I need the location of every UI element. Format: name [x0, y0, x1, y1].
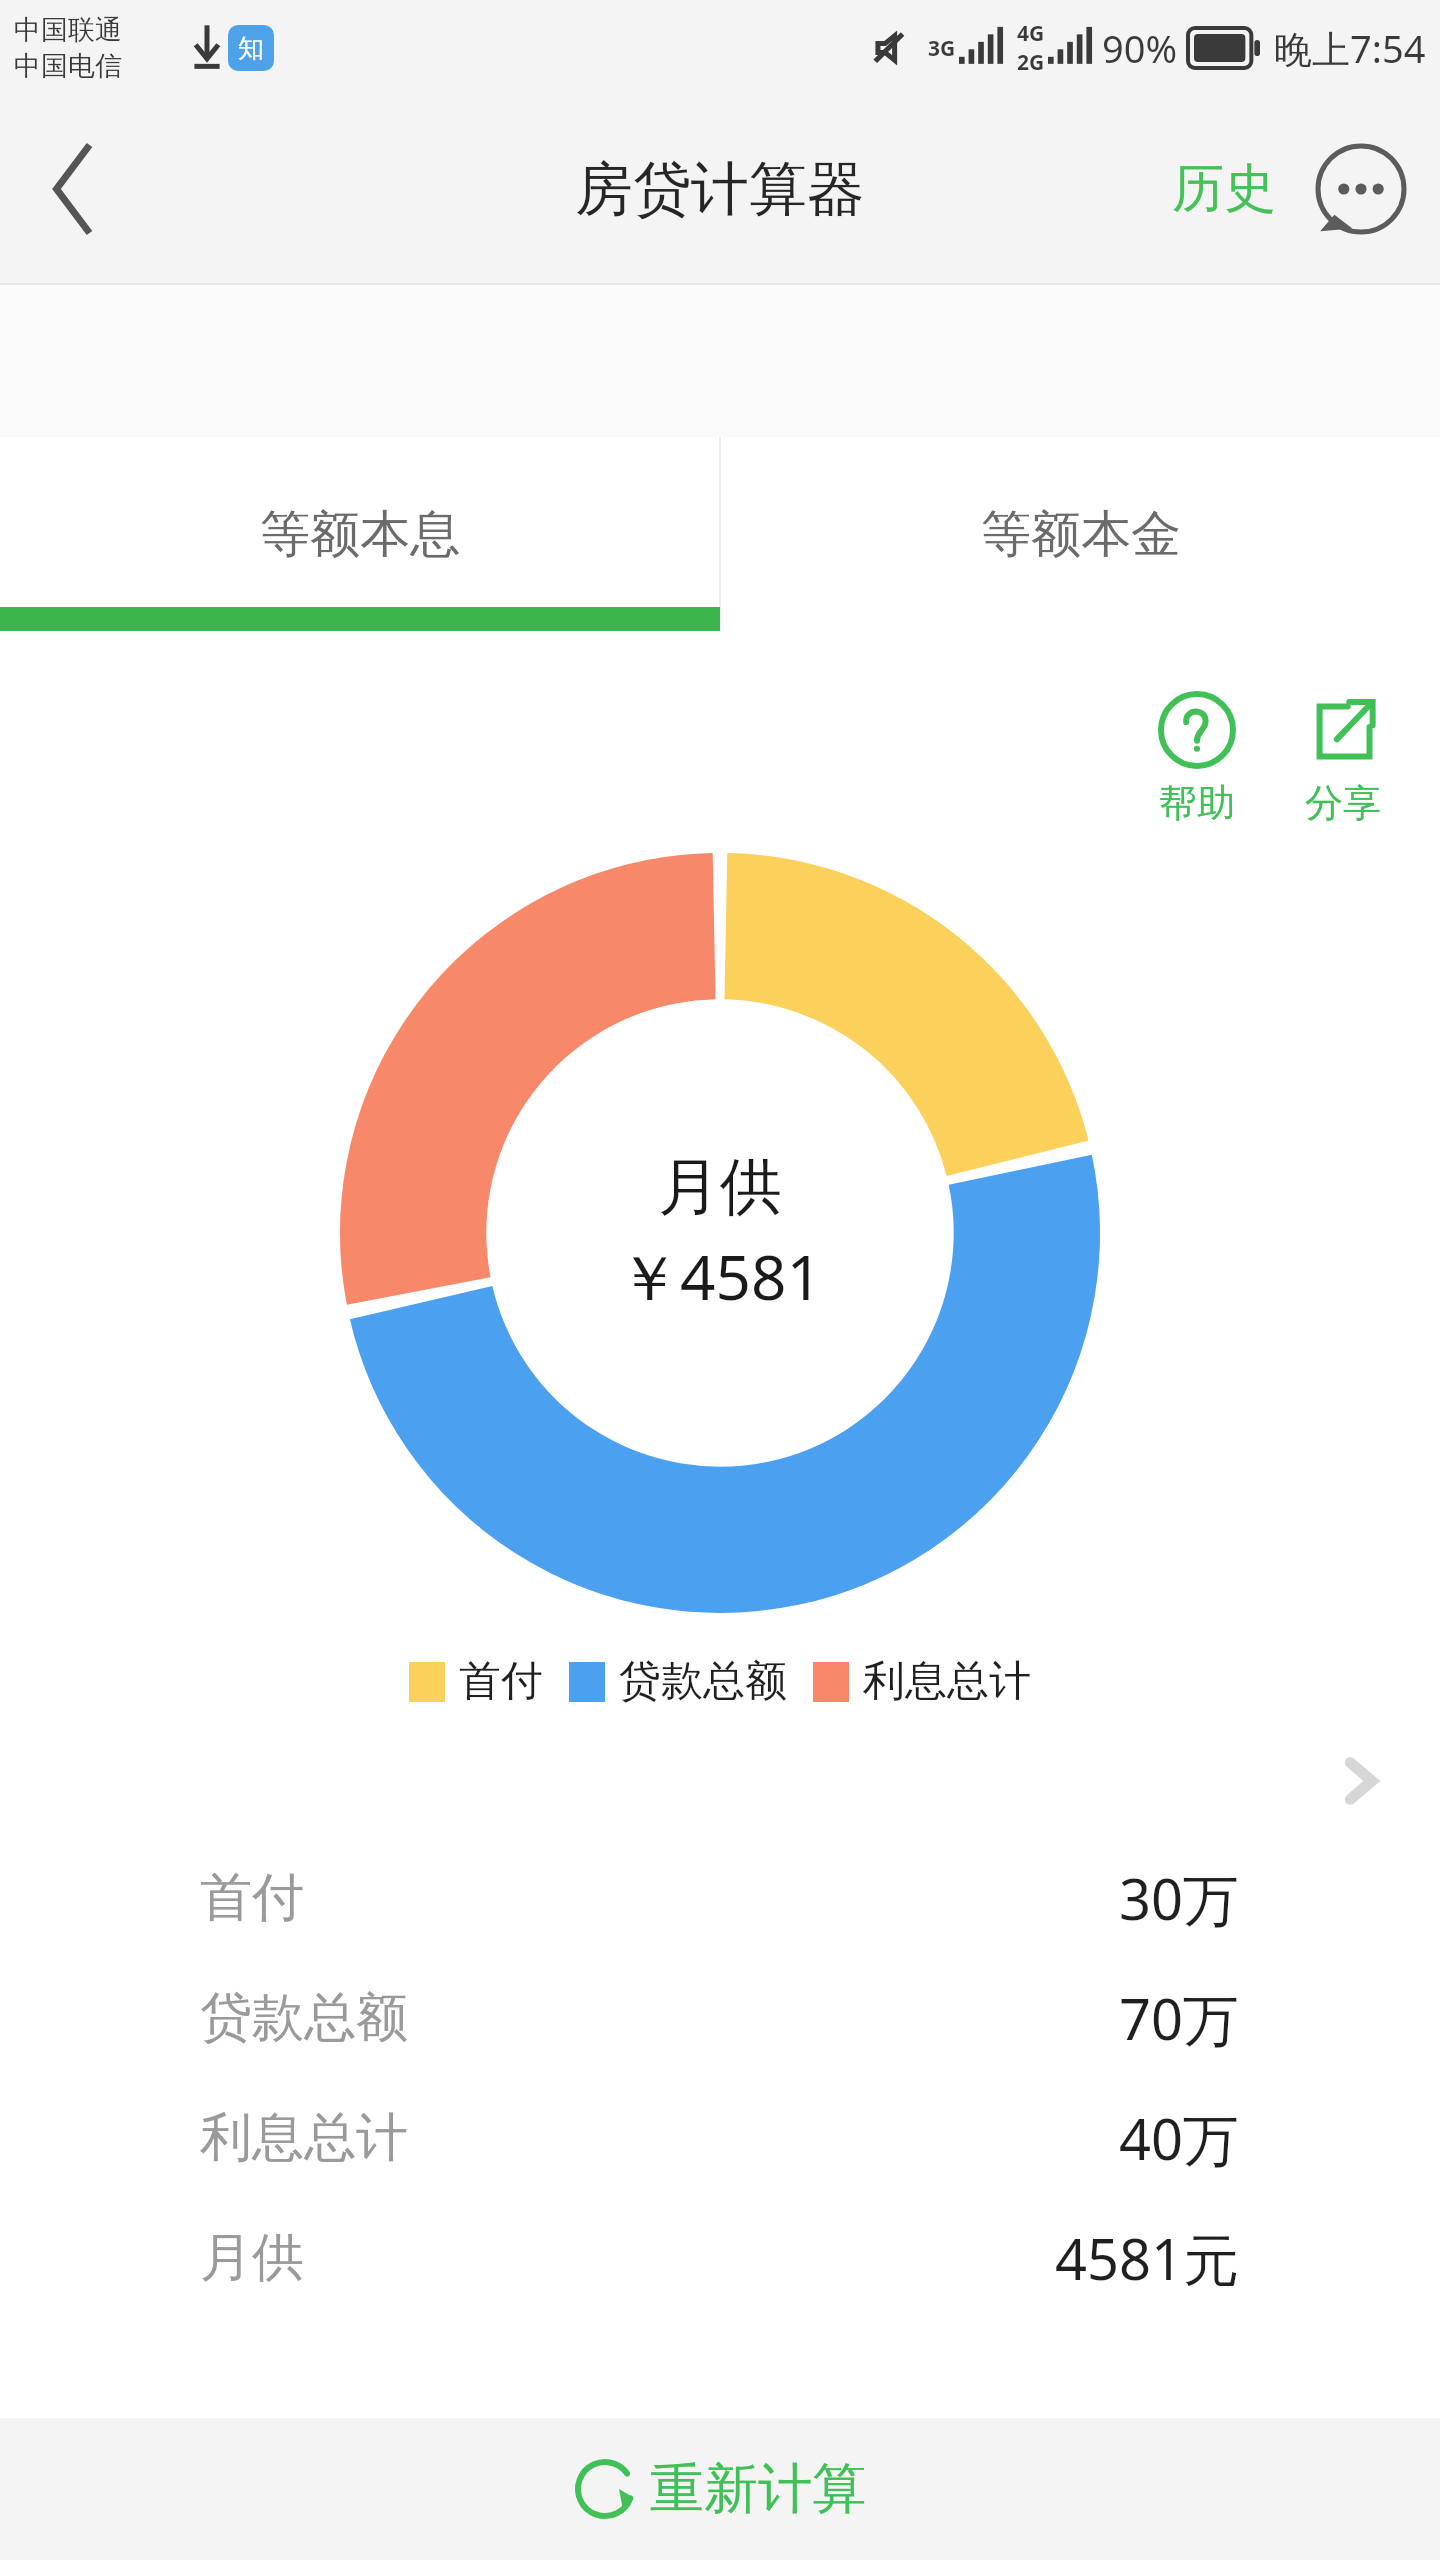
button[interactable]: 重新计算 [0, 2418, 1440, 2560]
button[interactable]: 更多 [1306, 134, 1416, 244]
staticText: 首付 [459, 1655, 543, 1708]
button[interactable]: 返回 [0, 95, 150, 283]
staticText: ￥4581 [618, 1234, 822, 1319]
staticText: 月供 [658, 1148, 782, 1226]
staticText: 重新计算 [650, 2455, 866, 2523]
staticText: 知 [238, 32, 264, 65]
button[interactable]: 月供 [0, 2198, 1440, 2318]
staticText: 中国联通 [14, 13, 122, 47]
staticText: 3G [928, 34, 956, 63]
button[interactable]: 利息总计 [0, 2078, 1440, 2198]
staticText: 历史 [1172, 156, 1276, 222]
button[interactable]: 贷款总额 [0, 1958, 1440, 2078]
staticText: 4581元 [1055, 2220, 1240, 2296]
staticText: 4G [1017, 19, 1045, 48]
staticText: 中国电信 [14, 49, 122, 83]
button[interactable]: 查看还款明细 [1320, 1741, 1400, 1821]
staticText: 利息总计 [200, 2105, 408, 2171]
staticText: 晚上7:54 [1274, 22, 1426, 74]
staticText: 等额本金 [981, 503, 1181, 566]
staticText: 分享 [1305, 779, 1381, 827]
staticText: 90% [1102, 22, 1178, 74]
staticText: 30万 [1119, 1860, 1240, 1936]
staticText: 帮助 [1159, 779, 1235, 827]
staticText: 贷款总额 [200, 1985, 408, 2051]
staticText: 贷款总额 [619, 1655, 787, 1708]
staticText: 首付 [200, 1865, 304, 1931]
staticText: 40万 [1119, 2100, 1240, 2176]
staticText: 等额本息 [260, 503, 460, 566]
staticText: 2G [1017, 48, 1045, 77]
button[interactable]: 等额本金 [721, 437, 1440, 631]
staticText: 月供 [200, 2225, 304, 2291]
button[interactable]: 帮助 [1152, 687, 1242, 831]
button[interactable]: 等额本息 [0, 437, 719, 631]
button[interactable]: 分享 [1298, 687, 1388, 831]
staticText: 利息总计 [863, 1655, 1031, 1708]
button[interactable]: 首付 [0, 1838, 1440, 1958]
button[interactable]: 历史 [1158, 138, 1290, 240]
staticText: 房贷计算器 [575, 153, 865, 226]
staticText: 70万 [1119, 1980, 1240, 2056]
